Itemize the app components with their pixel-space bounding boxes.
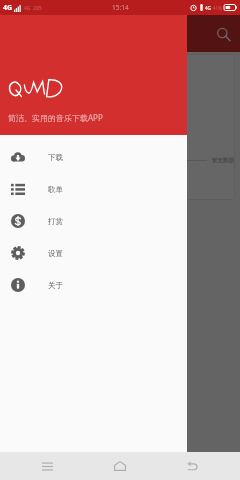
button[interactable]: Back bbox=[178, 452, 206, 480]
button[interactable]: 下载 bbox=[0, 141, 187, 173]
staticText: 4G bbox=[205, 5, 211, 11]
button[interactable]: Home bbox=[106, 452, 134, 480]
button[interactable]: 设置 bbox=[0, 237, 187, 269]
staticText: 设置 bbox=[48, 249, 63, 258]
staticText: 简洁、实用的音乐下载APP bbox=[8, 112, 103, 123]
staticText: 4G bbox=[3, 3, 13, 13]
staticText: 打赏 bbox=[48, 217, 63, 226]
staticText: 15:14 bbox=[112, 3, 129, 12]
button[interactable]: Recent apps bbox=[33, 452, 61, 480]
staticText: 4G bbox=[205, 5, 211, 11]
staticText: 41% bbox=[213, 5, 222, 11]
button[interactable]: 打赏 bbox=[0, 205, 187, 237]
staticText: 4G 285 bbox=[24, 5, 42, 12]
button[interactable]: Search bbox=[210, 21, 236, 47]
staticText: 歌单 bbox=[48, 185, 63, 194]
button[interactable]: 歌单 bbox=[0, 173, 187, 205]
staticText: 关于 bbox=[48, 281, 63, 290]
staticText: 4G 285 bbox=[24, 5, 42, 12]
button[interactable]: 关于 bbox=[0, 269, 187, 301]
staticText: 4G bbox=[3, 3, 13, 13]
staticText: 下载 bbox=[48, 153, 63, 162]
staticText: 41% bbox=[213, 5, 222, 11]
staticText: 暂无数据 bbox=[212, 157, 234, 164]
staticText: 15:14 bbox=[112, 3, 129, 12]
